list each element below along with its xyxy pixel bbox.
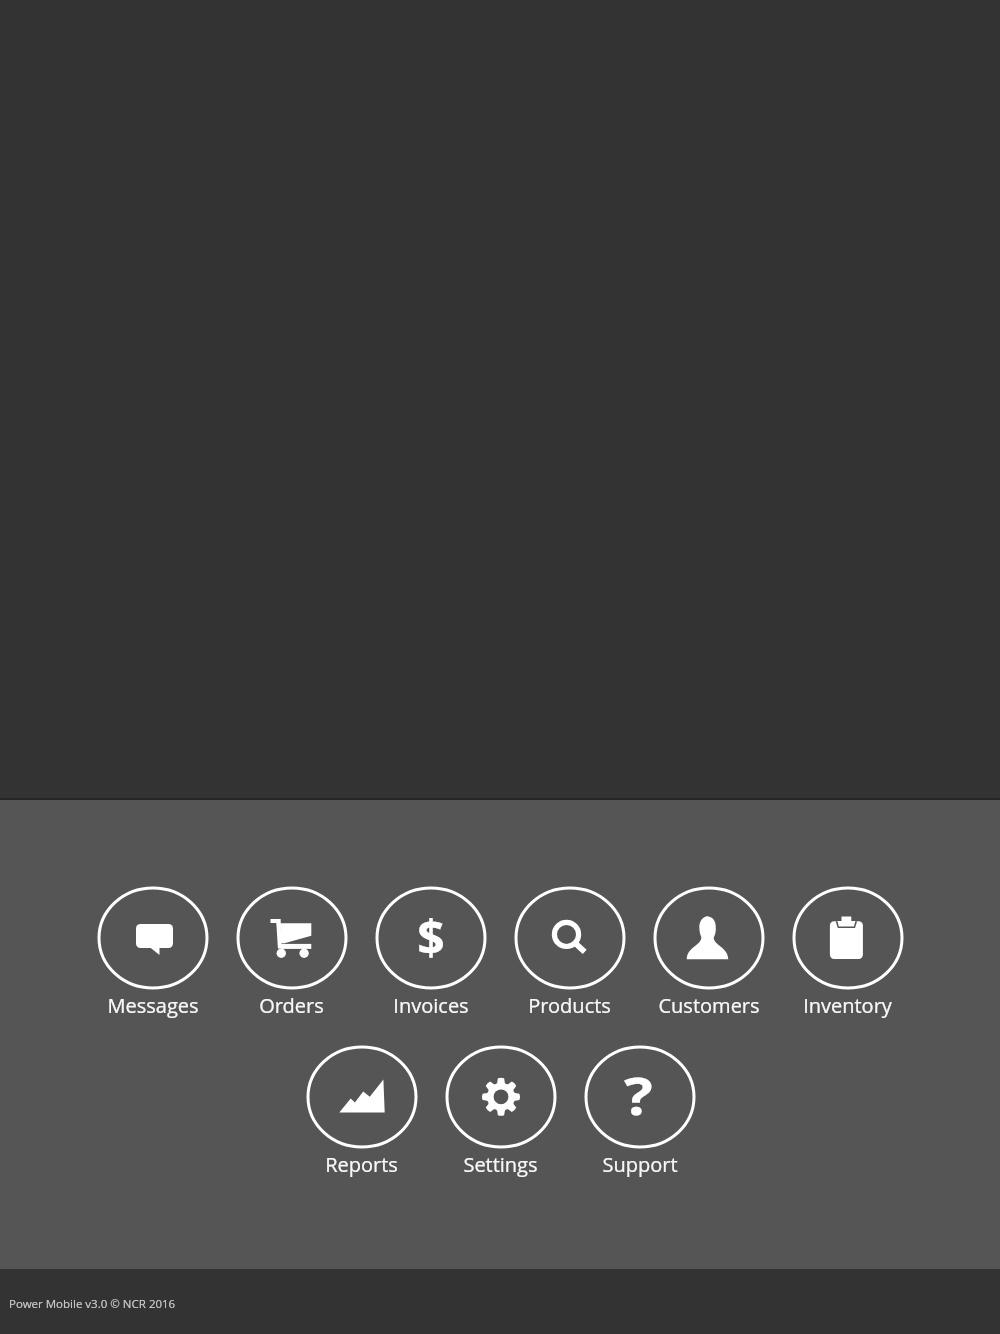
staticText: Reports — [325, 1151, 398, 1178]
button[interactable]: Orders — [222, 886, 361, 1019]
staticText: $ — [417, 904, 445, 969]
button[interactable]: Settings — [431, 1045, 570, 1178]
staticText: Settings — [463, 1151, 538, 1178]
button[interactable]: Customers — [639, 886, 778, 1019]
button[interactable]: Products — [500, 886, 639, 1019]
staticText: Messages — [107, 992, 199, 1019]
staticText: Customers — [658, 992, 760, 1019]
button[interactable]: Messages — [83, 886, 222, 1019]
staticText: Orders — [259, 992, 324, 1019]
staticText: Products — [528, 992, 611, 1019]
staticText: Invoices — [393, 992, 469, 1019]
button[interactable]: Reports — [292, 1045, 431, 1178]
staticText: ? — [624, 1059, 653, 1130]
staticText: Inventory — [803, 992, 892, 1019]
staticText: Power Mobile v3.0 © NCR 2016 — [9, 1296, 176, 1312]
staticText: Support — [602, 1151, 678, 1178]
button[interactable]: Inventory — [778, 886, 917, 1019]
button[interactable]: Support — [570, 1045, 709, 1178]
button[interactable]: Invoices — [361, 886, 500, 1019]
